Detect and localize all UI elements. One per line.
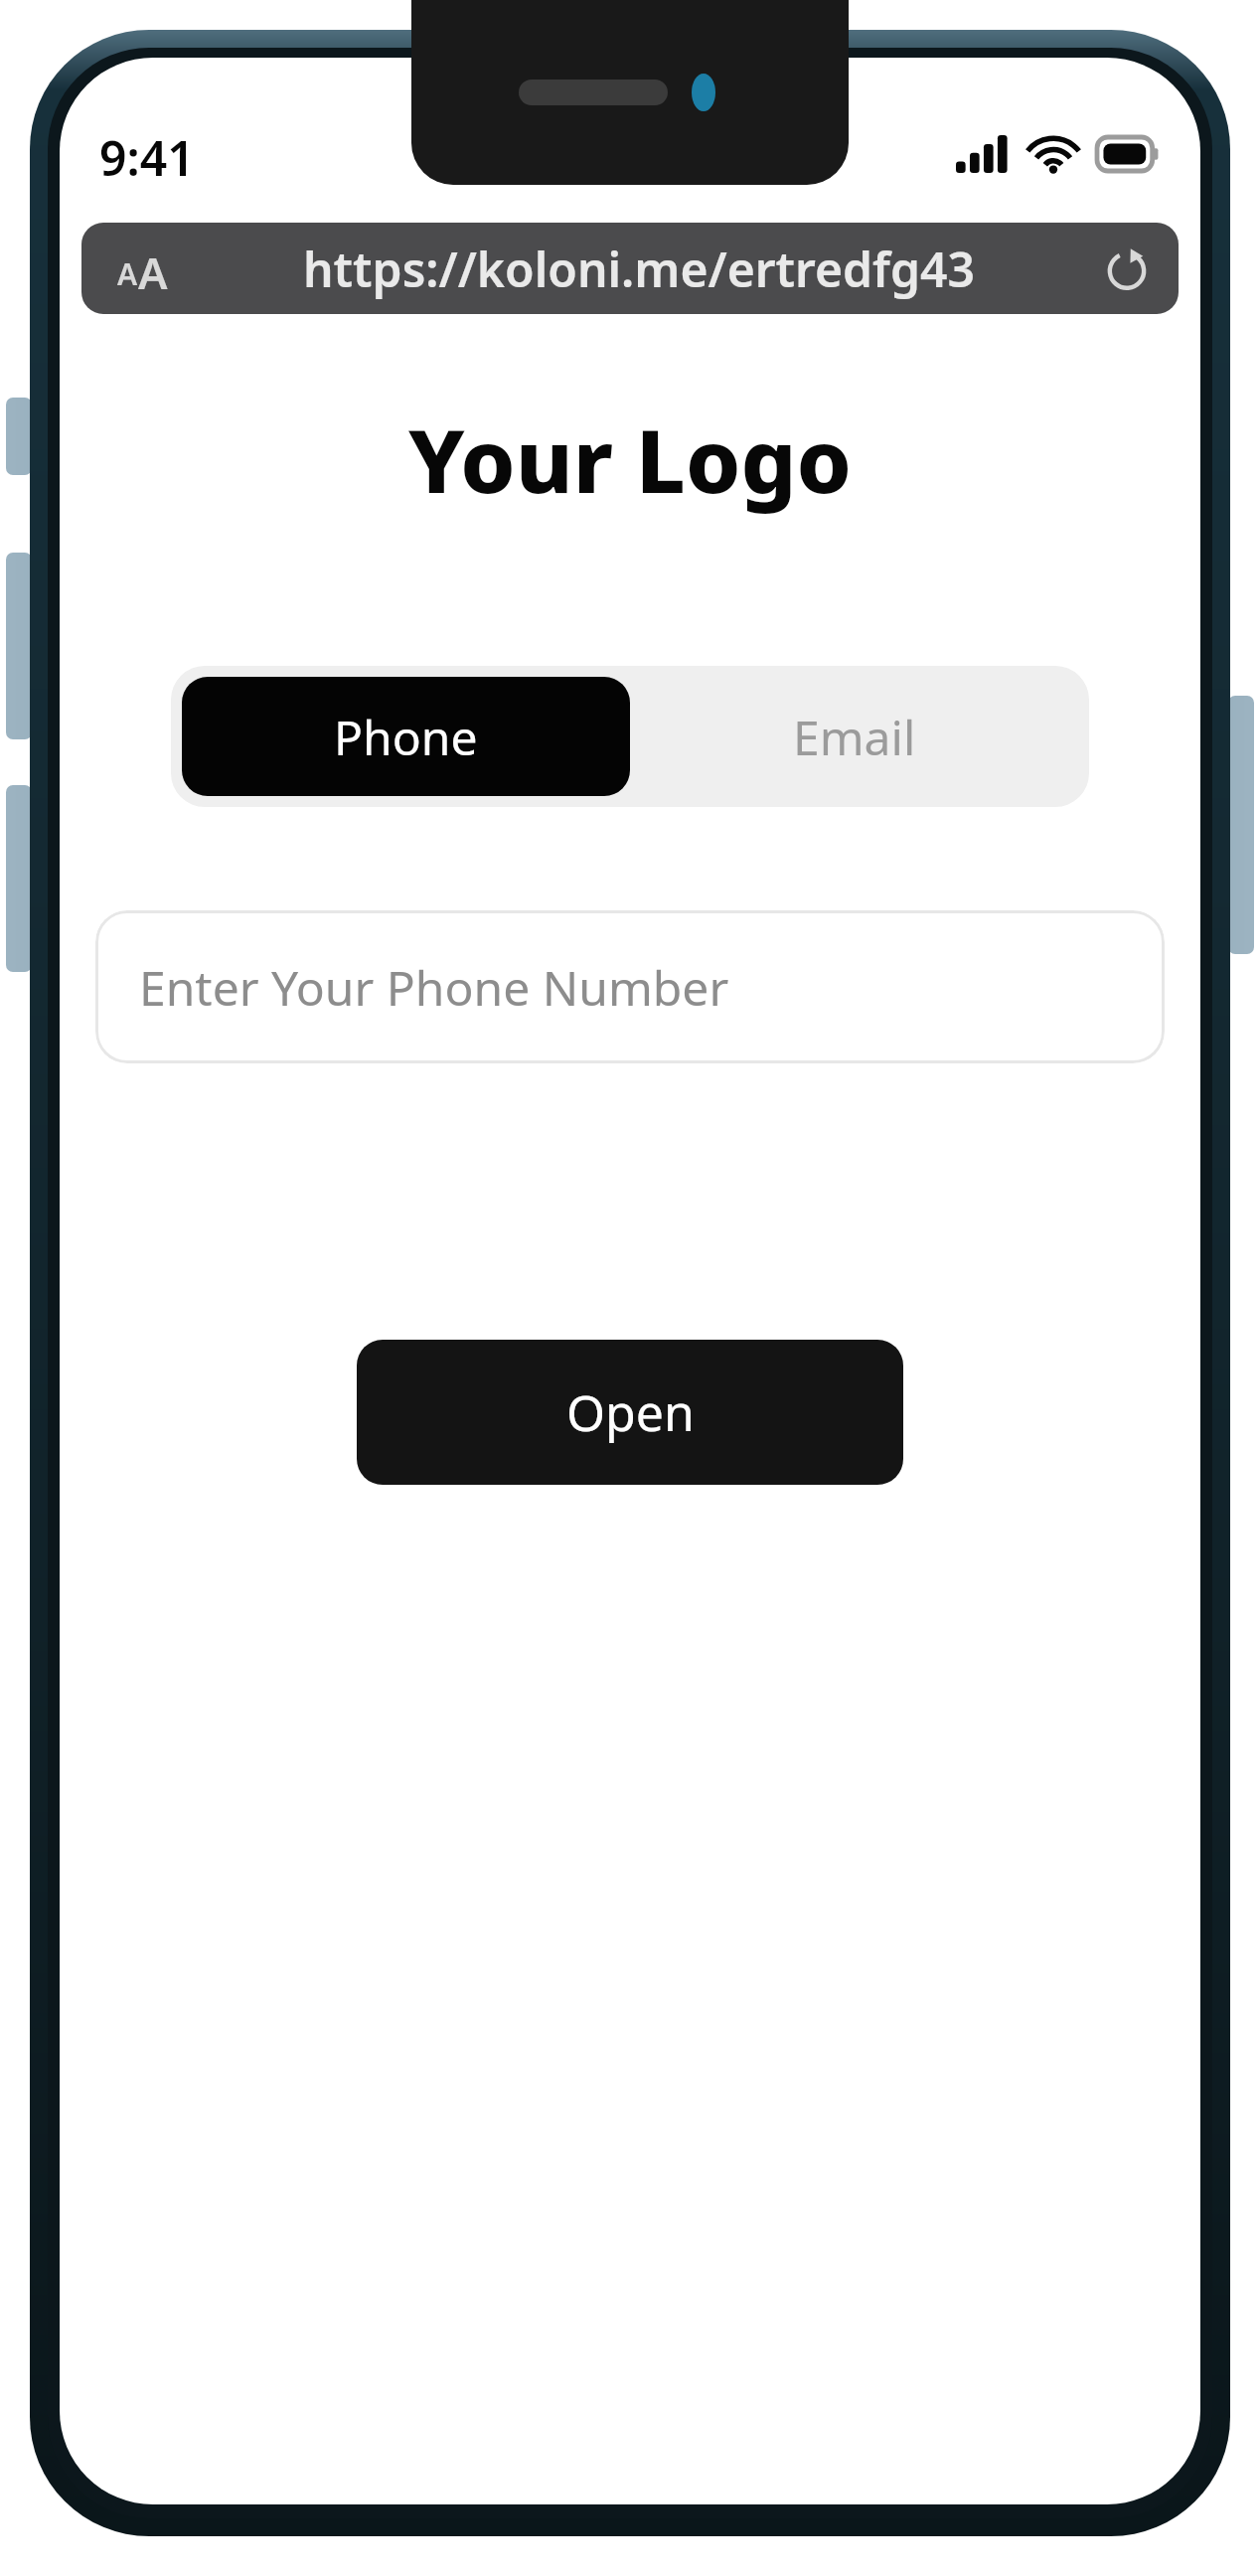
button[interactable]: Reload page [1101, 242, 1153, 294]
staticText: Phone [334, 705, 478, 769]
staticText: Open [566, 1378, 695, 1446]
other: Cellular signal [956, 135, 1010, 173]
staticText: https://koloni.me/ertredfg43 [303, 237, 975, 301]
button[interactable]: Enter Your Phone Number [95, 910, 1165, 1063]
other: Battery [1097, 137, 1161, 171]
staticText: 9:41 [99, 125, 195, 183]
button[interactable]: Phone [182, 677, 630, 796]
button[interactable]: Text size options [81, 223, 1179, 314]
button[interactable]: Open [357, 1340, 903, 1485]
staticText: Your Logo [60, 400, 1200, 519]
button[interactable]: Text size options [107, 242, 177, 294]
staticText: Email [793, 705, 916, 769]
button[interactable]: Email [630, 677, 1078, 796]
other: Wi-Fi [1027, 135, 1079, 173]
staticText: A [117, 253, 138, 294]
staticText: A [138, 242, 168, 294]
staticText: Enter Your Phone Number [139, 955, 729, 1020]
